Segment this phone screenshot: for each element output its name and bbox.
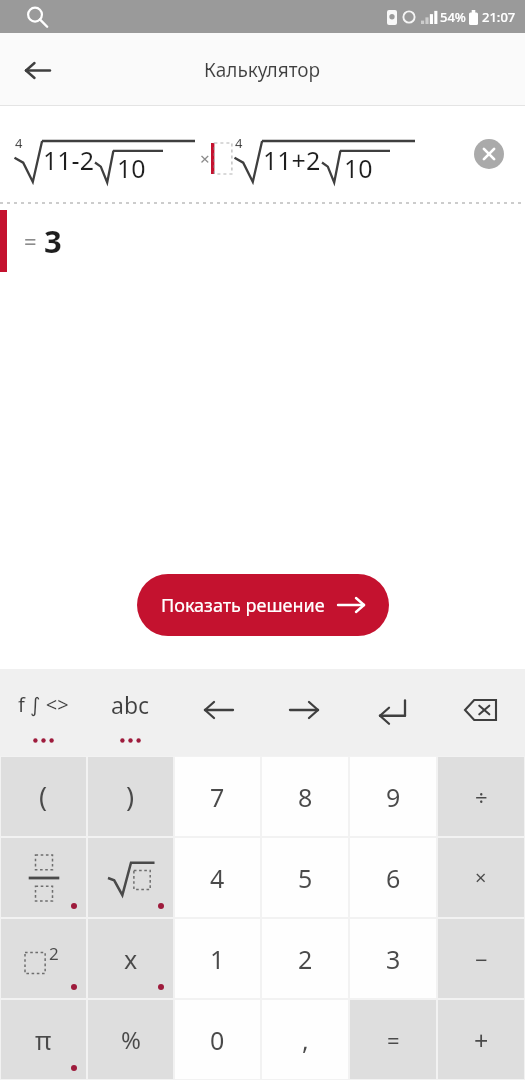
button[interactable]: Plus: [438, 1000, 524, 1079]
staticText: 1: [210, 942, 225, 976]
button[interactable]: Move left: [174, 669, 261, 756]
button[interactable]: 3: [350, 919, 436, 998]
staticText: 8: [298, 780, 313, 814]
staticText: f ∫ <>: [18, 691, 69, 718]
button[interactable]: 4: [175, 838, 260, 917]
staticText: 2: [49, 942, 59, 965]
button[interactable]: 9: [350, 757, 436, 836]
staticText: 4: [15, 134, 23, 152]
staticText: 7: [210, 780, 225, 814]
button[interactable]: Fraction: [1, 838, 86, 917]
button[interactable]: Enter: [349, 669, 437, 756]
staticText: 5: [298, 861, 313, 895]
staticText: =: [24, 226, 37, 256]
staticText: 54%: [440, 8, 466, 26]
staticText: 0: [210, 1023, 225, 1057]
button[interactable]: Clear: [467, 132, 511, 176]
staticText: ÷: [475, 782, 488, 812]
staticText: ×: [475, 864, 487, 891]
button[interactable]: Comma: [262, 1000, 348, 1079]
staticText: x: [124, 942, 138, 976]
button[interactable]: Minus: [438, 919, 524, 998]
button[interactable]: 1: [175, 919, 260, 998]
button[interactable]: Multiply: [438, 838, 524, 917]
other: Search: [26, 6, 47, 27]
button[interactable]: Close parenthesis: [88, 757, 173, 836]
button[interactable]: Functions: [0, 669, 87, 756]
button[interactable]: 5: [262, 838, 348, 917]
staticText: =: [387, 1025, 400, 1055]
staticText: 10: [117, 151, 146, 185]
button[interactable]: Equals: [350, 1000, 436, 1079]
button[interactable]: 7: [175, 757, 260, 836]
staticText: π: [35, 1023, 52, 1057]
staticText: 3: [44, 220, 62, 262]
button[interactable]: Percent: [88, 1000, 173, 1079]
staticText: Показать решение: [161, 593, 325, 618]
button[interactable]: Variable x: [88, 919, 173, 998]
staticText: 9: [386, 780, 401, 814]
staticText: 3: [386, 942, 401, 976]
staticText: abc: [111, 689, 150, 720]
button[interactable]: Power: [1, 919, 86, 998]
button[interactable]: Divide: [438, 757, 524, 836]
staticText: 21:07: [482, 8, 516, 26]
button[interactable]: 0: [175, 1000, 260, 1079]
staticText: 11-2: [43, 143, 94, 177]
button[interactable]: Open parenthesis: [1, 757, 86, 836]
button[interactable]: 6: [350, 838, 436, 917]
staticText: ): [126, 778, 135, 815]
staticText: ,: [302, 1023, 309, 1057]
staticText: −: [475, 944, 488, 974]
staticText: ×: [200, 147, 210, 170]
button[interactable]: Square root: [88, 838, 173, 917]
staticText: %: [121, 1023, 141, 1056]
staticText: 6: [386, 861, 401, 895]
button[interactable]: 8: [262, 757, 348, 836]
button[interactable]: Pi: [1, 1000, 86, 1079]
button[interactable]: abc: [87, 669, 174, 756]
button[interactable]: Back: [13, 46, 61, 94]
staticText: 10: [344, 151, 373, 185]
button[interactable]: Показать решение: [137, 574, 389, 636]
button[interactable]: Backspace: [437, 669, 525, 756]
staticText: 2: [298, 942, 313, 976]
staticText: +: [474, 1023, 489, 1057]
staticText: 4: [235, 134, 243, 152]
button[interactable]: 2: [262, 919, 348, 998]
staticText: 4: [210, 861, 225, 895]
staticText: 11+2: [263, 143, 321, 177]
staticText: Калькулятор: [204, 57, 321, 83]
staticText: (: [39, 778, 48, 815]
button[interactable]: Move right: [261, 669, 349, 756]
